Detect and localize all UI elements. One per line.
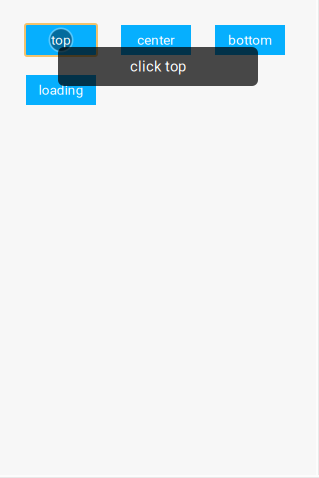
staticText: center (137, 32, 175, 48)
button[interactable]: bottom (215, 25, 285, 55)
staticText: loading (38, 82, 83, 98)
staticText: bottom (228, 32, 272, 48)
staticText: top (51, 32, 71, 48)
button[interactable]: center (121, 25, 191, 55)
button[interactable]: loading (26, 75, 96, 105)
staticText: click top (130, 58, 186, 75)
button[interactable]: top (26, 25, 96, 55)
